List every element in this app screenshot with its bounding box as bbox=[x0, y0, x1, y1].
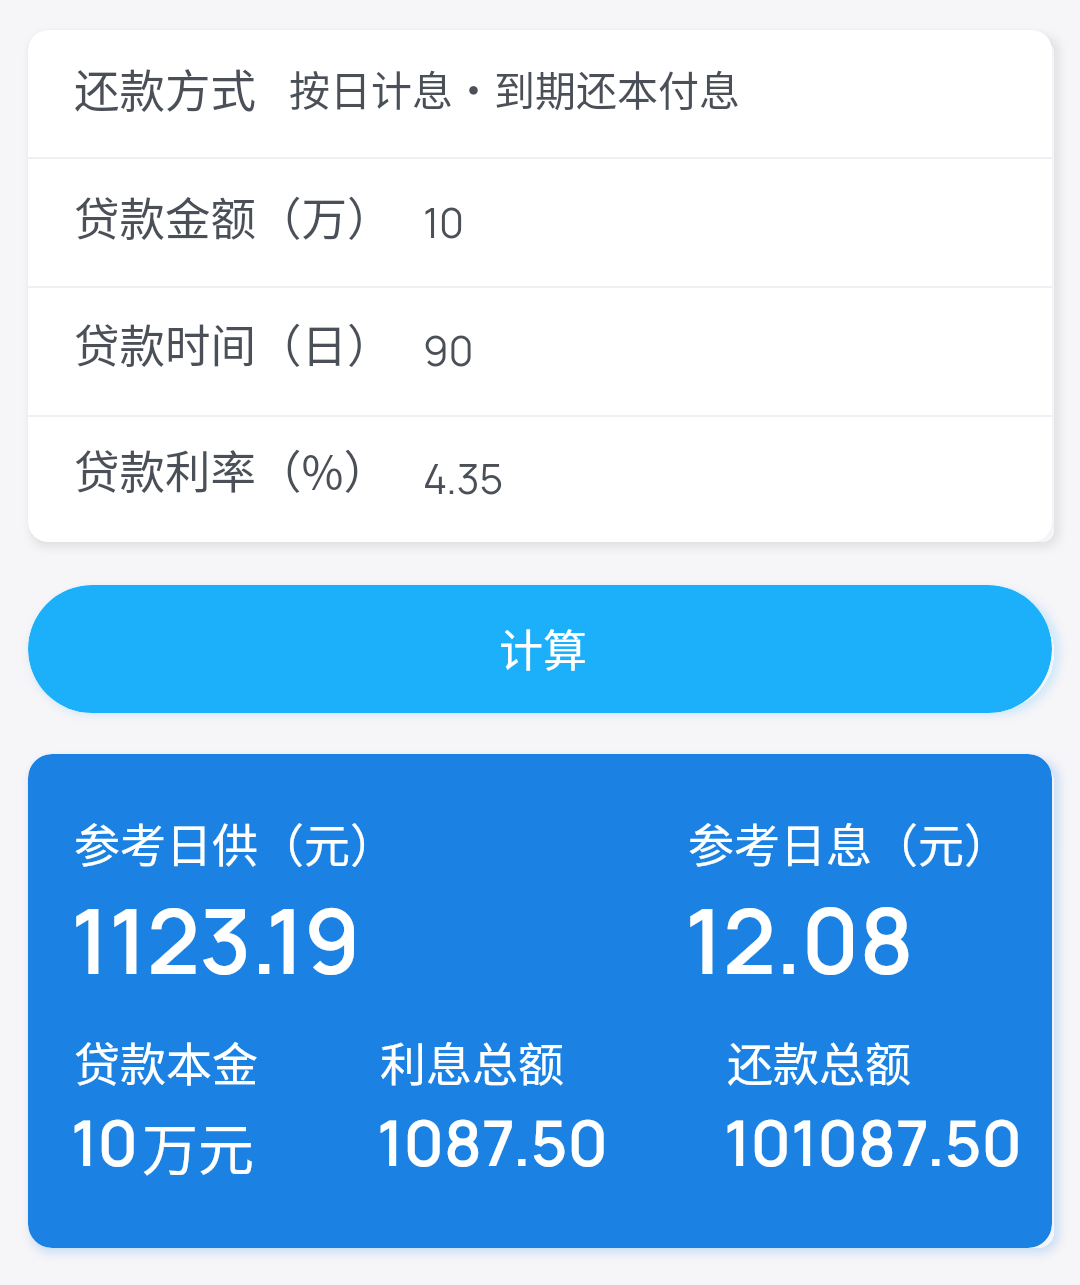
button[interactable]: 贷款金额（万） bbox=[28, 159, 1052, 286]
staticText: 计算 bbox=[499, 616, 587, 680]
staticText: 1087.50 bbox=[377, 1099, 609, 1185]
staticText: 4.35 bbox=[423, 450, 504, 506]
staticText: 90 bbox=[423, 322, 474, 378]
staticText: 1123.19 bbox=[71, 878, 361, 1001]
staticText: 10 bbox=[71, 1099, 139, 1185]
staticText: 12.08 bbox=[685, 878, 914, 1001]
button[interactable]: 贷款利率（%） bbox=[28, 417, 1052, 542]
staticText: 贷款金额（万） bbox=[74, 183, 393, 249]
staticText: 还款总额 bbox=[727, 1028, 911, 1095]
button[interactable]: 计算 bbox=[28, 585, 1052, 713]
staticText: 按日计息·到期还本付息 bbox=[289, 58, 740, 117]
button[interactable]: 还款方式 bbox=[28, 30, 1052, 157]
staticText: 10 bbox=[423, 194, 464, 250]
staticText: 参考日息（元） bbox=[688, 809, 1010, 876]
staticText: 万元 bbox=[142, 1105, 254, 1186]
staticText: 参考日供（元） bbox=[74, 809, 396, 876]
button[interactable]: 贷款时间（日） bbox=[28, 288, 1052, 415]
staticText: 还款方式 bbox=[74, 55, 257, 121]
staticText: 利息总额 bbox=[380, 1028, 564, 1095]
staticText: 贷款利率（%） bbox=[74, 436, 389, 502]
staticText: 贷款本金 bbox=[74, 1028, 258, 1095]
staticText: 101087.50 bbox=[724, 1099, 1023, 1185]
staticText: 贷款时间（日） bbox=[74, 310, 393, 376]
